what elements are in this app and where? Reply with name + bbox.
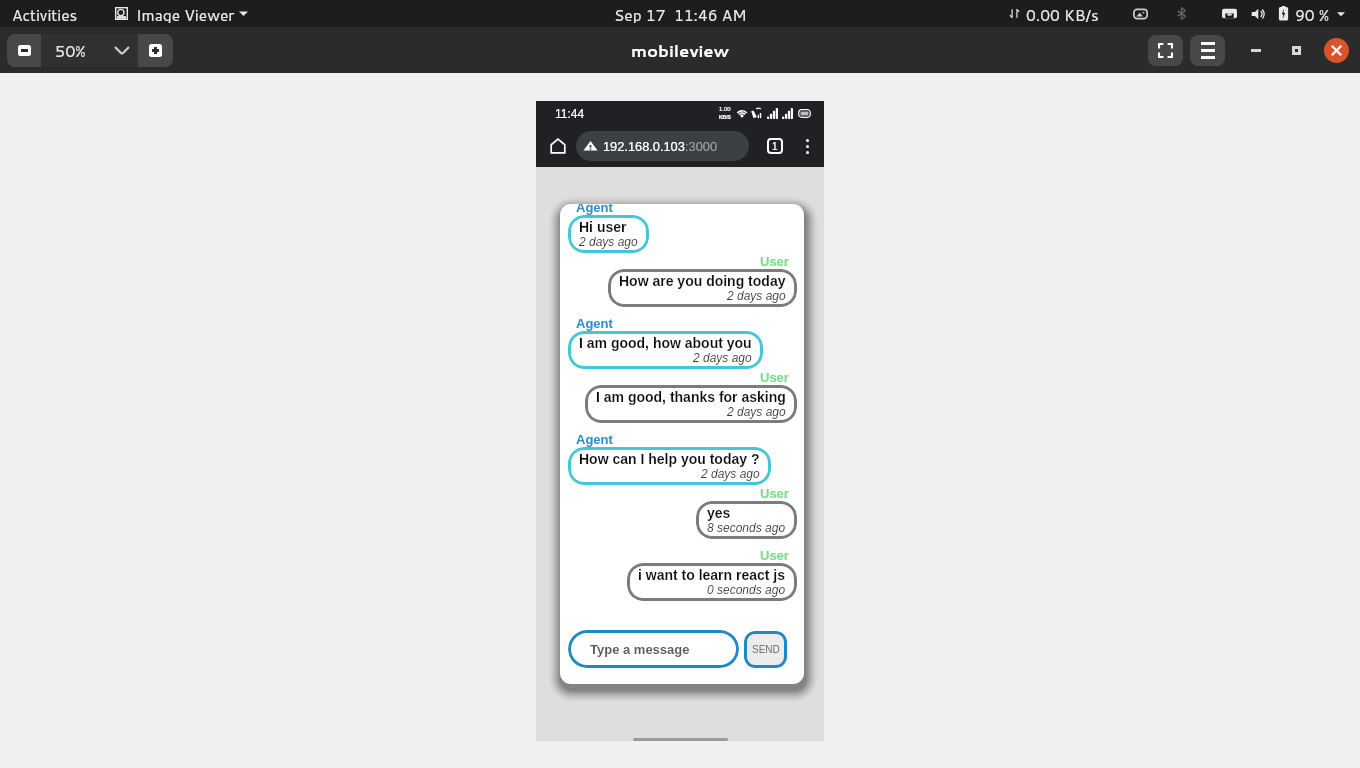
staticText: Sep 17 11:46 AM xyxy=(614,4,747,23)
button[interactable]: Main menu xyxy=(1190,35,1225,66)
staticText: 2 days ago xyxy=(727,405,786,418)
staticText: Agent xyxy=(576,316,613,331)
staticText: yes xyxy=(707,505,731,521)
staticText: 50% xyxy=(55,39,86,62)
staticText: 2 days ago xyxy=(693,351,752,364)
staticText: Hi user xyxy=(579,219,627,235)
button[interactable]: Fullscreen xyxy=(1148,35,1183,66)
button[interactable]: Tabs xyxy=(761,132,789,160)
button[interactable]: Activities xyxy=(3,0,87,27)
staticText: User xyxy=(760,486,789,501)
button[interactable]: yes xyxy=(696,501,797,539)
staticText: 1.00 xyxy=(719,106,731,113)
button[interactable]: SEND xyxy=(744,631,787,668)
staticText: 11:44 xyxy=(555,107,585,120)
button[interactable]: I am good, how about you xyxy=(568,331,763,369)
staticText: KB/S xyxy=(719,114,731,120)
button[interactable]: 192.168.0.103 xyxy=(576,131,749,161)
button[interactable]: Zoom out xyxy=(7,34,41,67)
staticText: Image Viewer xyxy=(136,4,235,23)
staticText: How can I help you today ? xyxy=(579,451,760,467)
staticText: How are you doing today xyxy=(619,273,786,289)
staticText: 1 xyxy=(772,141,778,152)
staticText: User xyxy=(760,254,789,269)
button[interactable]: How can I help you today ? xyxy=(568,447,771,485)
staticText: 0 seconds ago xyxy=(707,583,786,596)
staticText: 2 days ago xyxy=(727,289,786,302)
button[interactable]: Zoom in xyxy=(138,34,173,67)
button[interactable]: Home xyxy=(543,131,573,161)
staticText: Agent xyxy=(576,432,613,447)
button[interactable]: Image Viewer xyxy=(107,0,256,27)
button[interactable]: 50% xyxy=(41,34,138,67)
staticText: Activities xyxy=(12,4,78,23)
button[interactable]: How are you doing today xyxy=(608,269,797,307)
staticText: I am good, thanks for asking xyxy=(596,389,786,405)
staticText: Type a message xyxy=(590,642,690,657)
button[interactable]: Sep 17 11:46 AM xyxy=(606,0,755,27)
staticText: 2 days ago xyxy=(579,235,638,248)
button[interactable]: 90 % xyxy=(1218,0,1349,27)
button[interactable]: I am good, thanks for asking xyxy=(585,385,797,423)
button[interactable]: Close xyxy=(1324,38,1349,63)
button[interactable]: Minimize xyxy=(1241,35,1271,65)
button[interactable]: Maximize xyxy=(1281,35,1311,65)
staticText: 2 days ago xyxy=(701,467,760,480)
button[interactable]: More options xyxy=(793,132,821,160)
staticText: i want to learn react js xyxy=(638,567,786,583)
staticText: User xyxy=(760,548,789,563)
staticText: Agent xyxy=(576,204,613,215)
staticText: I am good, how about you xyxy=(579,335,752,351)
other: Screenshot xyxy=(1133,8,1148,20)
button[interactable]: i want to learn react js xyxy=(627,563,797,601)
staticText: SEND xyxy=(752,644,780,655)
staticText: 90 % xyxy=(1295,4,1329,23)
staticText: 0.00 KB/s xyxy=(1026,4,1099,23)
staticText: 192.168.0.103 xyxy=(603,139,685,153)
button[interactable]: 0.00 KB/s xyxy=(1005,0,1103,27)
staticText: mobileview xyxy=(631,39,730,62)
staticText: User xyxy=(760,370,789,385)
button[interactable]: Type a message xyxy=(568,630,739,668)
button[interactable]: Hi user xyxy=(568,215,649,253)
staticText: 8 seconds ago xyxy=(707,521,786,534)
other: Bluetooth xyxy=(1175,7,1188,20)
staticText: :3000 xyxy=(685,139,718,153)
